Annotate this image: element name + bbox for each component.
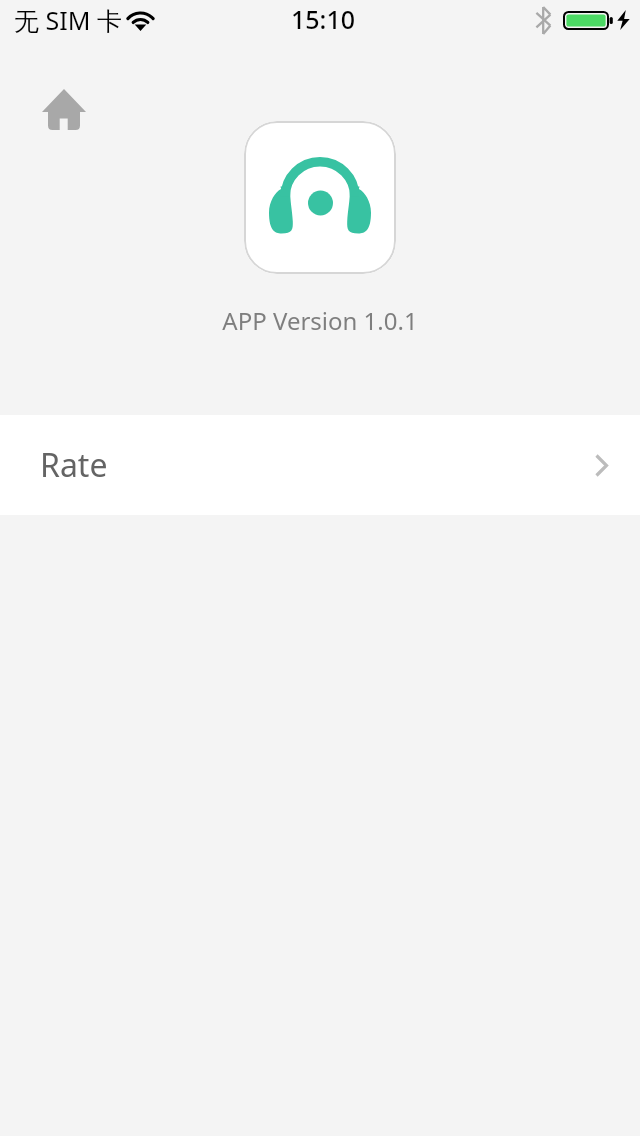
staticText: APP Version 1.0.1 [0, 304, 640, 337]
button[interactable]: Rate [0, 415, 640, 515]
staticText: 15:10 [291, 2, 356, 36]
button[interactable]: Home [29, 74, 99, 144]
staticText: Rate [40, 443, 108, 487]
staticText: 无 SIM 卡 [14, 3, 122, 37]
